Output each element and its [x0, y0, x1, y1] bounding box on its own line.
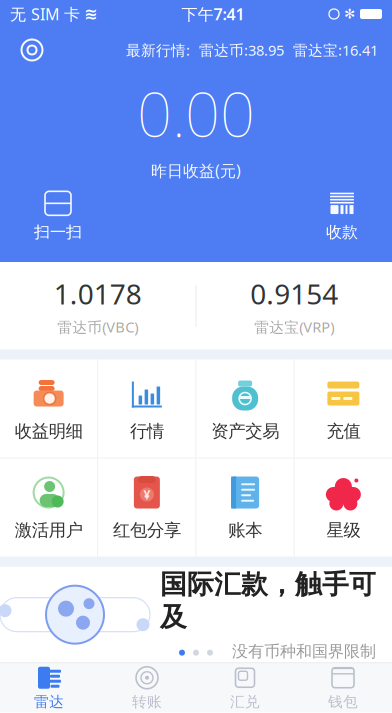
staticText: 雷达	[34, 693, 64, 711]
staticText: 转账	[132, 693, 162, 711]
staticText: 下午7:41	[181, 3, 244, 25]
staticText: 雷达宝(VRP)	[254, 317, 334, 337]
staticText: 没有币种和国界限制	[232, 642, 376, 661]
staticText: 国际汇款，触手可及	[160, 568, 376, 634]
button[interactable]: 钱包	[294, 661, 392, 713]
staticText: 无 SIM 卡	[10, 3, 80, 25]
button[interactable]: 最新行情:	[126, 40, 378, 60]
staticText: 雷达宝:16.41	[293, 40, 378, 60]
staticText: 星级	[326, 519, 360, 541]
staticText: 1.0178	[54, 275, 142, 312]
button[interactable]: ¥	[98, 459, 195, 557]
staticText: 红包分享	[113, 519, 181, 541]
button[interactable]: 收益明细	[0, 360, 97, 458]
button[interactable]: 雷达	[0, 661, 98, 713]
staticText: 收益明细	[15, 420, 83, 442]
button[interactable]: 激活用户	[0, 459, 97, 557]
staticText: 雷达币(VBC)	[57, 317, 138, 337]
button[interactable]: 国际汇款，触手可及	[0, 567, 392, 663]
staticText: 钱包	[328, 693, 358, 711]
button[interactable]: 行情	[98, 360, 195, 458]
staticText: 收款	[326, 222, 358, 242]
button[interactable]: 收款	[314, 187, 370, 246]
staticText: ¥	[143, 486, 150, 502]
staticText: 激活用户	[15, 519, 83, 541]
button[interactable]: 资产交易	[196, 360, 294, 458]
staticText: 行情	[130, 420, 164, 442]
staticText: 充值	[326, 420, 360, 442]
staticText: 0.9154	[250, 275, 338, 312]
staticText: ✻	[344, 6, 355, 21]
button[interactable]: 充值	[295, 360, 392, 458]
button[interactable]: 星级	[295, 459, 392, 557]
staticText: 雷达币:38.95	[199, 40, 284, 60]
staticText: 扫一扫	[34, 222, 82, 242]
button[interactable]: 账本	[196, 459, 294, 557]
staticText: 0.00	[137, 72, 255, 154]
button[interactable]: 转账	[98, 661, 196, 713]
button[interactable]: 0.9154	[196, 262, 392, 350]
staticText: ≋	[84, 5, 97, 23]
button[interactable]: 设置	[14, 34, 50, 66]
staticText: 账本	[228, 519, 262, 541]
button[interactable]: 1.0178	[0, 262, 195, 350]
staticText: 最新行情:	[126, 40, 190, 60]
button[interactable]: 扫一扫	[22, 187, 94, 246]
staticText: 资产交易	[211, 420, 279, 442]
staticText: 汇兑	[230, 693, 260, 711]
button[interactable]: 汇兑	[196, 661, 294, 713]
staticText: 昨日收益(元)	[151, 160, 241, 181]
